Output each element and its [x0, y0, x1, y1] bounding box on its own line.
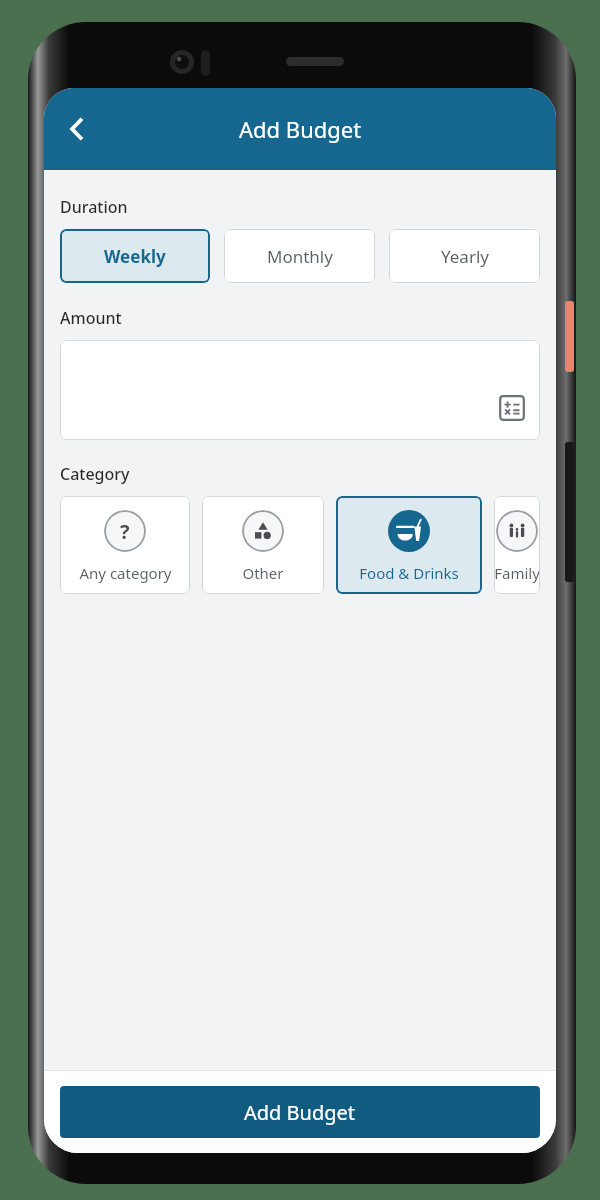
button[interactable]: Family	[494, 496, 540, 594]
button[interactable]: Calculator	[496, 392, 528, 424]
staticText: Other	[242, 563, 284, 583]
button[interactable]: Yearly	[389, 229, 540, 283]
staticText: Weekly	[104, 245, 166, 268]
staticText: Yearly	[441, 245, 489, 268]
button[interactable]: Calculator	[60, 340, 540, 440]
staticText: Family	[494, 563, 540, 583]
staticText: Add Budget	[239, 114, 362, 144]
staticText: Food & Drinks	[359, 563, 459, 583]
button[interactable]: ?	[60, 496, 190, 594]
button[interactable]: Weekly	[60, 229, 210, 283]
staticText: Duration	[60, 196, 128, 218]
staticText: Monthly	[267, 245, 333, 268]
staticText: Amount	[60, 307, 122, 329]
staticText: ?	[120, 518, 130, 545]
staticText: Category	[60, 463, 130, 485]
button[interactable]: Monthly	[224, 229, 375, 283]
button[interactable]: Back	[50, 102, 104, 156]
button[interactable]: Add Budget	[60, 1086, 540, 1138]
staticText: Any category	[79, 563, 172, 583]
button[interactable]: Other	[202, 496, 324, 594]
staticText: Add Budget	[244, 1099, 356, 1126]
button[interactable]: Food & Drinks	[336, 496, 482, 594]
